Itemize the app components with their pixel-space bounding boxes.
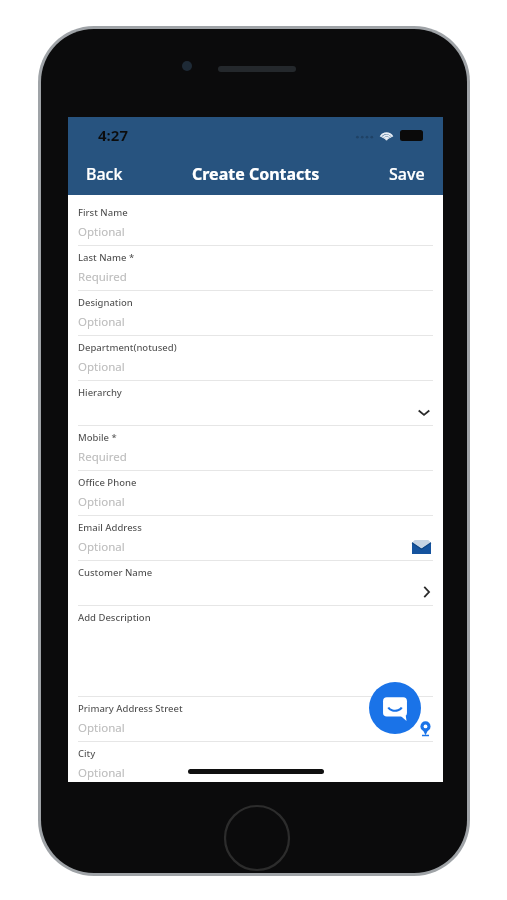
staticText: Required bbox=[78, 269, 127, 285]
staticText: Department(notused) bbox=[78, 341, 177, 354]
staticText: Add Description bbox=[78, 611, 151, 624]
staticText: Mobile * bbox=[78, 431, 117, 444]
staticText: Optional bbox=[78, 224, 125, 240]
button[interactable]: Last Name * bbox=[78, 246, 433, 291]
staticText: 4:27 bbox=[98, 125, 128, 145]
staticText: City bbox=[78, 747, 96, 760]
staticText: Optional bbox=[78, 539, 125, 555]
button[interactable]: Mobile * bbox=[78, 426, 433, 471]
button[interactable]: Email Address bbox=[78, 516, 433, 561]
staticText: Optional bbox=[78, 720, 125, 736]
staticText: Designation bbox=[78, 296, 133, 309]
other: Email bbox=[412, 540, 431, 554]
button[interactable]: Add Description bbox=[78, 606, 433, 697]
staticText: Required bbox=[78, 449, 127, 465]
staticText: Save bbox=[389, 163, 425, 185]
button[interactable]: City bbox=[78, 742, 433, 782]
staticText: Optional bbox=[78, 494, 125, 510]
staticText: Optional bbox=[78, 359, 125, 375]
staticText: Create Contacts bbox=[192, 163, 320, 185]
staticText: Primary Address Street bbox=[78, 702, 183, 715]
button[interactable]: Hierarchy bbox=[78, 381, 433, 426]
button[interactable]: Customer Name bbox=[78, 561, 433, 606]
staticText: Customer Name bbox=[78, 566, 153, 579]
staticText: Office Phone bbox=[78, 476, 137, 489]
button[interactable]: Open chat bbox=[369, 682, 421, 734]
staticText: First Name bbox=[78, 206, 128, 219]
other: Select bbox=[422, 585, 431, 599]
other: Location bbox=[420, 721, 431, 736]
button[interactable]: Save bbox=[371, 153, 443, 195]
button[interactable]: Back bbox=[68, 153, 141, 195]
button[interactable]: Office Phone bbox=[78, 471, 433, 516]
staticText: Optional bbox=[78, 765, 125, 781]
other: Expand bbox=[417, 408, 431, 417]
button[interactable]: Primary Address Street bbox=[78, 697, 433, 742]
staticText: Last Name * bbox=[78, 251, 135, 264]
button[interactable]: Designation bbox=[78, 291, 433, 336]
button[interactable]: First Name bbox=[78, 201, 433, 246]
staticText: Email Address bbox=[78, 521, 142, 534]
button[interactable]: Department(notused) bbox=[78, 336, 433, 381]
staticText: Hierarchy bbox=[78, 386, 122, 399]
staticText: Back bbox=[86, 163, 123, 185]
staticText: Optional bbox=[78, 314, 125, 330]
